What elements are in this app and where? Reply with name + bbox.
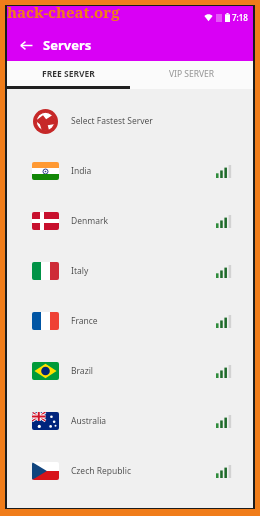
staticText: hack-cheat.org (7, 2, 120, 22)
staticText: Australia (71, 415, 107, 427)
other: Signal strength (216, 315, 231, 328)
staticText: Select Fastest Server (71, 115, 153, 127)
other: Signal strength (216, 215, 231, 228)
staticText: France (71, 315, 98, 327)
button[interactable]: FREE SERVER (7, 61, 130, 86)
staticText: Czech Republic (71, 465, 131, 477)
staticText: 7:18 (232, 12, 248, 23)
other: Signal strength (216, 365, 231, 378)
button[interactable]: India (7, 146, 253, 196)
staticText: Italy (71, 265, 89, 277)
staticText: India (71, 165, 92, 177)
other: Signal strength (216, 265, 231, 278)
button[interactable]: Select Fastest Server (7, 96, 253, 146)
button[interactable]: Denmark (7, 196, 253, 246)
button[interactable]: Back (16, 35, 36, 55)
staticText: Servers (43, 36, 92, 54)
staticText: VIP SERVER (169, 68, 215, 80)
staticText: FREE SERVER (42, 68, 95, 80)
button[interactable]: Brazil (7, 346, 253, 396)
other: Signal strength (216, 165, 231, 178)
other: Signal strength (216, 465, 231, 478)
button[interactable]: Czech Republic (7, 446, 253, 496)
button[interactable]: Italy (7, 246, 253, 296)
other: Signal strength (216, 415, 231, 428)
button[interactable]: VIP SERVER (130, 61, 253, 86)
staticText: Brazil (71, 365, 94, 377)
button[interactable]: Australia (7, 396, 253, 446)
staticText: Denmark (71, 215, 109, 227)
button[interactable]: France (7, 296, 253, 346)
